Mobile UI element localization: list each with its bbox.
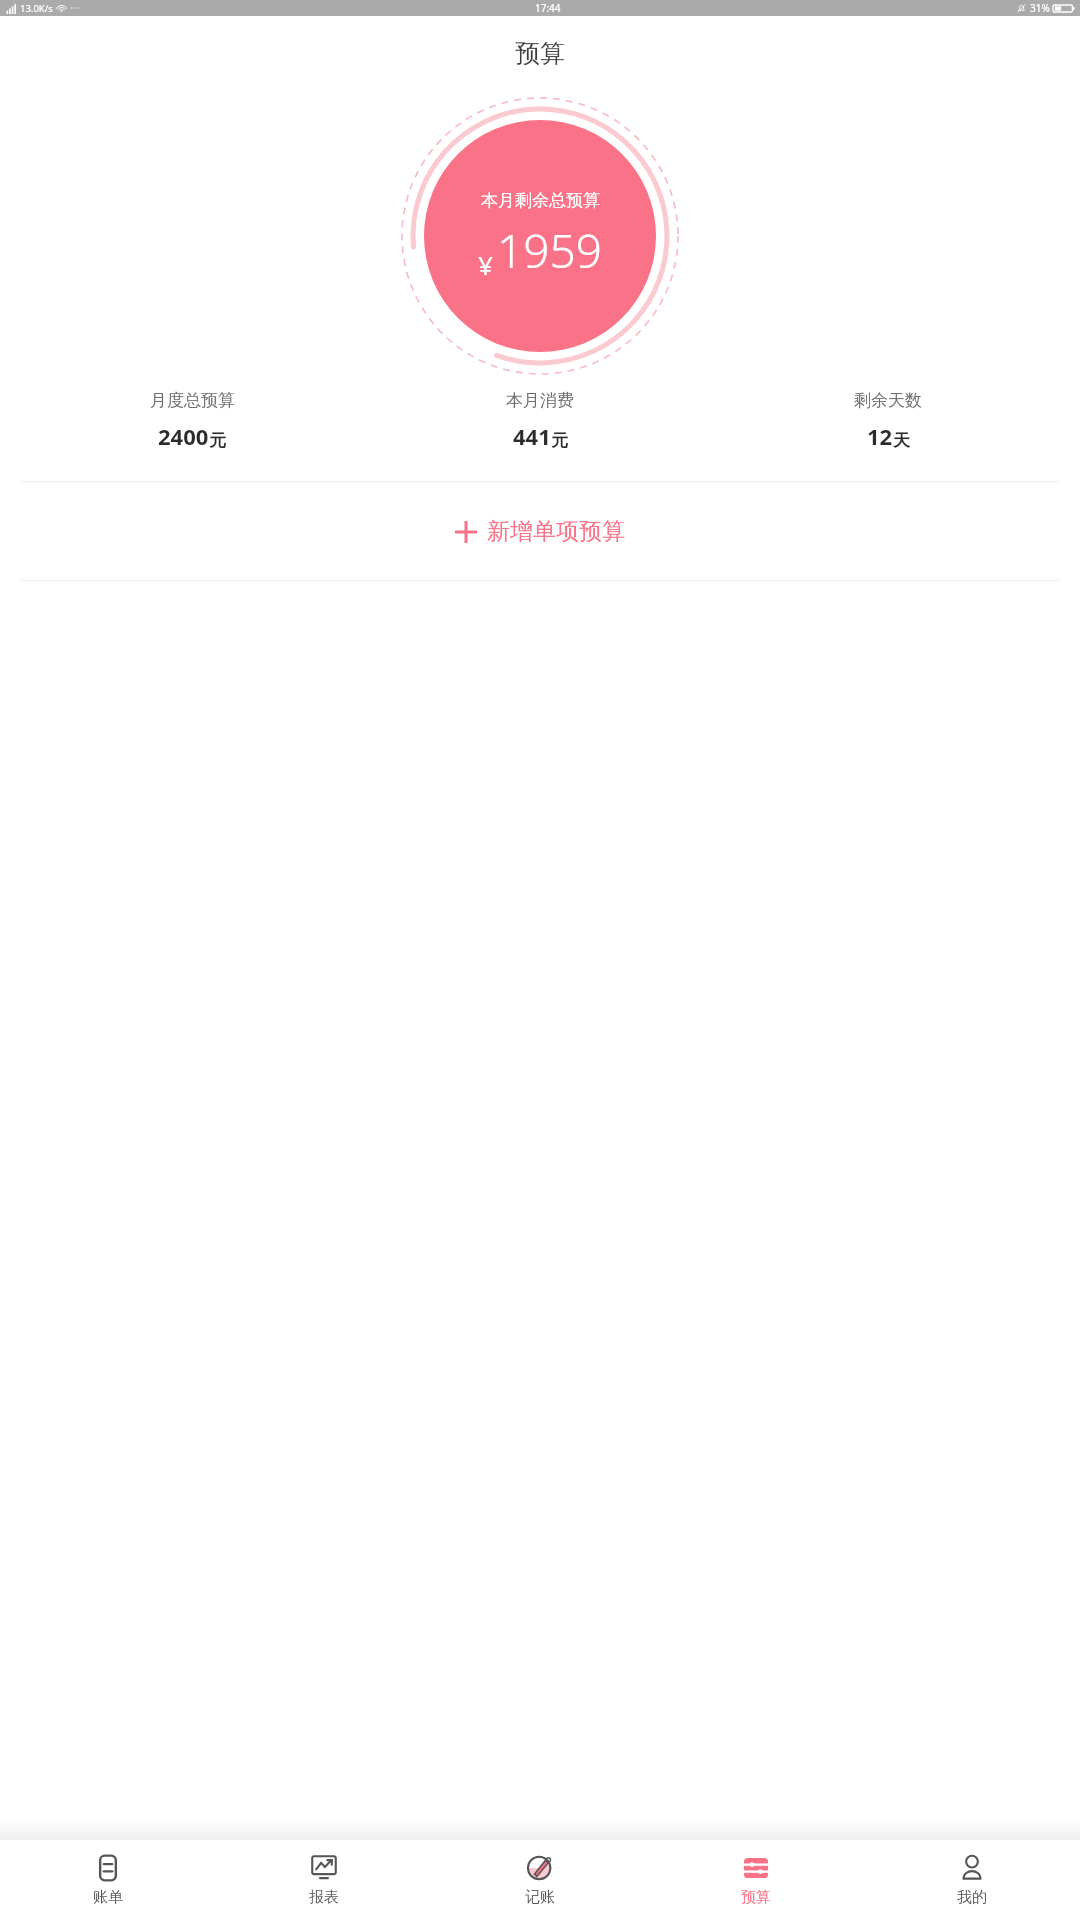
- staticText: 预算: [741, 1888, 771, 1907]
- staticText: 元: [551, 430, 568, 451]
- button[interactable]: 记账: [432, 1840, 648, 1920]
- staticText: 新增单项预算: [487, 517, 625, 546]
- staticText: 月度总预算: [150, 390, 235, 411]
- other: 记账: [526, 1854, 554, 1882]
- button[interactable]: 预算: [648, 1840, 864, 1920]
- staticText: 剩余天数: [854, 390, 922, 411]
- staticText: 31%: [1030, 1, 1050, 15]
- other: 报表: [310, 1854, 338, 1882]
- other: 我的: [958, 1854, 986, 1882]
- other: 账单: [94, 1854, 122, 1882]
- staticText: 本月消费: [506, 390, 574, 411]
- staticText: 12: [867, 421, 893, 451]
- staticText: 账单: [93, 1888, 123, 1907]
- other: 预算: [742, 1854, 770, 1882]
- button[interactable]: 报表: [216, 1840, 432, 1920]
- staticText: 我的: [957, 1888, 987, 1907]
- staticText: 1959: [497, 219, 603, 282]
- staticText: 天: [893, 430, 910, 451]
- staticText: 元: [209, 430, 226, 451]
- staticText: 13.0K/s: [20, 2, 53, 15]
- staticText: 441: [513, 421, 551, 451]
- staticText: 记账: [525, 1888, 555, 1907]
- button[interactable]: 账单: [0, 1840, 216, 1920]
- staticText: 2400: [158, 421, 209, 451]
- staticText: 本月剩余总预算: [481, 190, 600, 211]
- staticText: 预算: [515, 38, 565, 69]
- staticText: ¥: [478, 247, 493, 282]
- button[interactable]: 新增单项预算: [18, 481, 1062, 581]
- button[interactable]: 我的: [864, 1840, 1080, 1920]
- staticText: 报表: [309, 1888, 339, 1907]
- staticText: 17:44: [535, 1, 561, 15]
